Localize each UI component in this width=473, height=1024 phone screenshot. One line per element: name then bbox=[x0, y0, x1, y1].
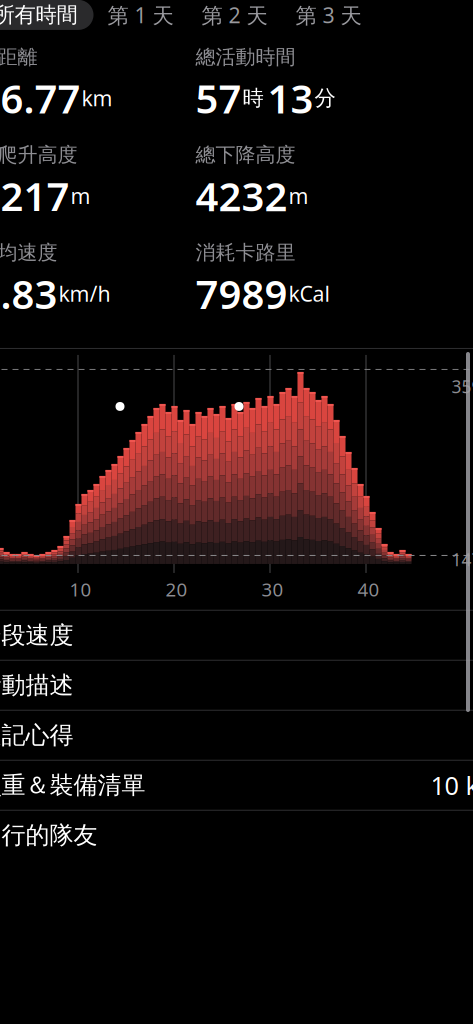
staticText: 活動描述 bbox=[0, 670, 73, 700]
staticText: 負重＆裝備清單 bbox=[0, 770, 145, 800]
button[interactable]: 第 3 天 bbox=[281, 0, 375, 30]
staticText: 分段速度 bbox=[0, 620, 73, 650]
staticText: 總下降高度 bbox=[195, 143, 295, 167]
button[interactable]: 第 1 天 bbox=[93, 0, 187, 30]
staticText: 0.83 bbox=[0, 267, 57, 320]
button[interactable]: 所有時間 bbox=[0, 0, 93, 30]
staticText: kCal bbox=[288, 279, 330, 307]
button[interactable]: 同行的隊友 bbox=[0, 811, 473, 860]
staticText: 20 bbox=[165, 577, 187, 602]
staticText: 46.77 bbox=[0, 71, 80, 125]
staticText: 13 bbox=[267, 71, 313, 125]
staticText: 同行的隊友 bbox=[0, 820, 97, 850]
staticText: km bbox=[81, 84, 112, 112]
staticText: 第 3 天 bbox=[295, 1, 361, 29]
staticText: 第 2 天 bbox=[201, 1, 267, 29]
staticText: 消耗卡路里 bbox=[195, 240, 295, 265]
button[interactable]: 活動描述 bbox=[0, 661, 473, 711]
staticText: 總爬升高度 bbox=[0, 143, 77, 167]
staticText: 第 1 天 bbox=[107, 1, 173, 29]
staticText: m bbox=[70, 181, 90, 210]
staticText: 所有時間 bbox=[0, 2, 77, 28]
staticText: 總距離 bbox=[0, 45, 37, 69]
staticText: 30 bbox=[261, 577, 283, 602]
staticText: 10 bbox=[69, 577, 91, 602]
staticText: 40 bbox=[357, 577, 379, 602]
staticText: 平均速度 bbox=[0, 240, 57, 265]
staticText: 時 bbox=[242, 85, 263, 111]
staticText: 總活動時間 bbox=[195, 45, 295, 69]
staticText: 57 bbox=[195, 71, 241, 125]
staticText: 10 kg bbox=[430, 768, 473, 802]
staticText: m bbox=[288, 181, 308, 210]
staticText: 分 bbox=[314, 85, 335, 111]
staticText: 後記心得 bbox=[0, 720, 73, 750]
staticText: 4232 bbox=[195, 169, 287, 222]
staticText: 1475 bbox=[451, 548, 473, 571]
staticText: km/h bbox=[58, 279, 110, 307]
button[interactable]: 後記心得 bbox=[0, 711, 473, 761]
staticText: 7989 bbox=[195, 267, 287, 320]
staticText: 4217 bbox=[0, 169, 69, 222]
button[interactable]: 第 2 天 bbox=[187, 0, 281, 30]
button[interactable]: 負重＆裝備清單 bbox=[0, 761, 473, 811]
button[interactable]: 分段速度 bbox=[0, 611, 473, 661]
staticText: 3597 bbox=[451, 375, 473, 398]
